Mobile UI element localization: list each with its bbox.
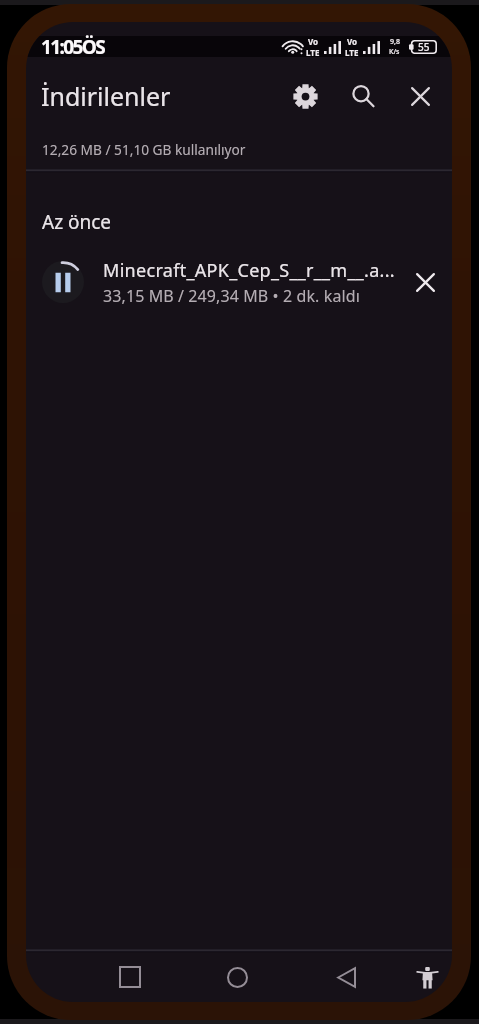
button[interactable]: Back [322, 953, 370, 1001]
button[interactable]: Minecraft_APK_Cep_S__r__m__.a... [26, 251, 452, 313]
staticText: 12,26 MB / 51,10 GB kullanılıyor [42, 140, 246, 159]
button[interactable]: Accessibility [403, 953, 451, 1001]
staticText: LTE [345, 47, 359, 58]
button[interactable]: Cancel download [401, 258, 449, 306]
staticText: 9,8 [390, 37, 400, 47]
staticText: Minecraft_APK_Cep_S__r__m__.a... [103, 258, 395, 283]
staticText: 55 [418, 40, 430, 54]
staticText: İndirilenler [41, 79, 171, 113]
staticText: 11:05ÖS [41, 34, 105, 60]
staticText: LTE [306, 47, 320, 58]
button[interactable]: Settings [281, 72, 329, 120]
staticText: K/s [389, 47, 400, 57]
staticText: Az önce [42, 209, 112, 235]
button[interactable]: Home [213, 953, 261, 1001]
staticText: Vo [308, 36, 319, 47]
button[interactable]: Close [396, 72, 444, 120]
staticText: Vo [347, 36, 358, 47]
staticText: 33,15 MB / 249,34 MB • 2 dk. kaldı [103, 285, 360, 307]
button[interactable]: Recent apps [106, 953, 154, 1001]
button[interactable]: Search [339, 72, 387, 120]
